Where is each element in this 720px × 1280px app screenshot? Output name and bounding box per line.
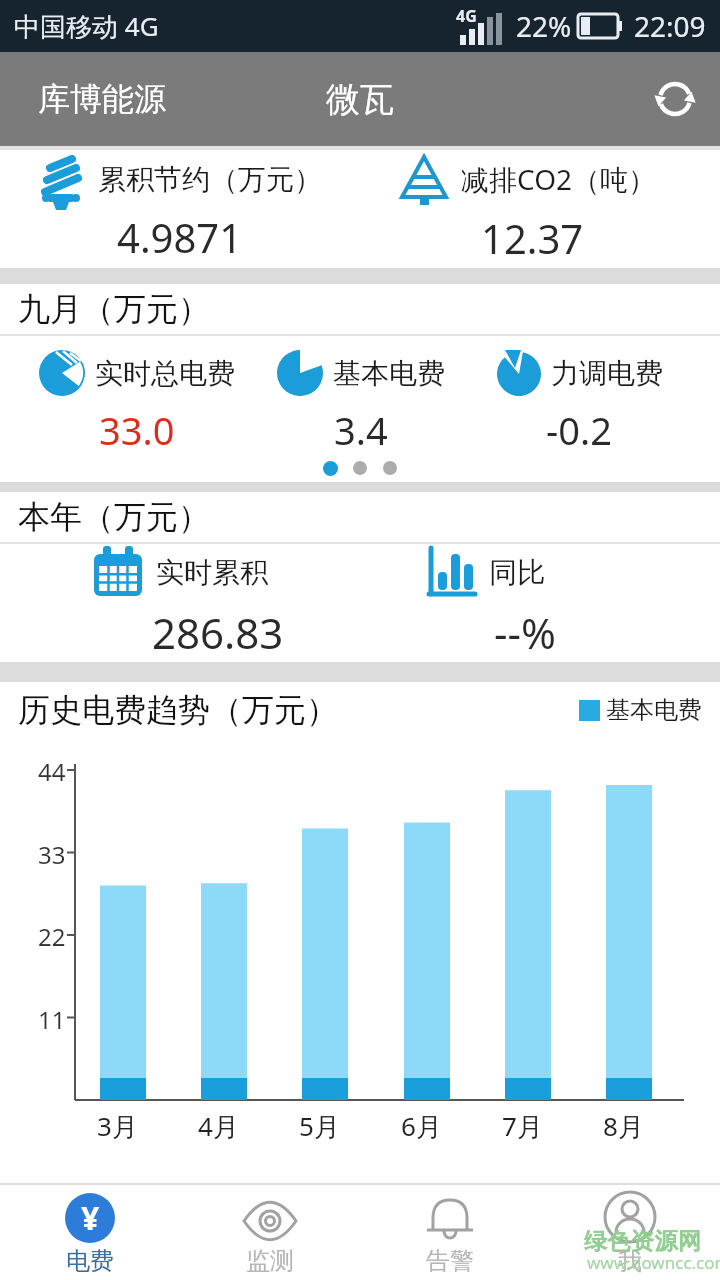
staticText: 5月 bbox=[299, 1108, 340, 1144]
staticText: 4.9871 bbox=[117, 210, 243, 264]
staticText: 7月 bbox=[502, 1108, 543, 1144]
staticText: 监测 bbox=[246, 1246, 294, 1276]
button[interactable]: 监测 bbox=[180, 1185, 360, 1280]
button[interactable]: 实时累积 bbox=[0, 546, 360, 661]
staticText: 6月 bbox=[401, 1108, 442, 1144]
staticText: 44 bbox=[38, 755, 66, 788]
staticText: --% bbox=[494, 604, 556, 661]
staticText: 中国移动 4G bbox=[14, 8, 159, 44]
button[interactable]: 我 bbox=[540, 1185, 720, 1280]
staticText: 4月 bbox=[198, 1108, 239, 1144]
staticText: 3.4 bbox=[334, 404, 388, 454]
button[interactable]: 同比 bbox=[360, 546, 720, 661]
button[interactable]: 基本电费 bbox=[258, 350, 463, 454]
staticText: 九月（万元） bbox=[18, 289, 210, 329]
staticText: 22 bbox=[38, 920, 66, 953]
staticText: 历史电费趋势（万元） bbox=[18, 690, 338, 730]
staticText: 实时总电费 bbox=[95, 356, 235, 391]
staticText: 电费 bbox=[66, 1246, 114, 1276]
staticText: 同比 bbox=[489, 555, 545, 590]
staticText: 33 bbox=[38, 838, 66, 871]
staticText: 22:09 bbox=[634, 7, 706, 45]
staticText: 告警 bbox=[426, 1246, 474, 1276]
staticText: 4G bbox=[456, 5, 477, 27]
button[interactable]: 库博能源 bbox=[38, 79, 166, 119]
staticText: 8月 bbox=[603, 1108, 644, 1144]
staticText: 绿色资源网 bbox=[584, 1227, 702, 1256]
staticText: 基本电费 bbox=[606, 695, 702, 725]
staticText: 本年（万元） bbox=[18, 497, 210, 537]
staticText: 基本电费 bbox=[333, 356, 445, 391]
staticText: www.downcc.com bbox=[587, 1251, 720, 1274]
staticText: 微瓦 bbox=[326, 78, 394, 121]
staticText: 33.0 bbox=[99, 404, 175, 454]
staticText: 286.83 bbox=[152, 604, 284, 661]
staticText: 11 bbox=[38, 1003, 66, 1036]
button[interactable]: 实时总电费 bbox=[16, 350, 258, 454]
button[interactable] bbox=[654, 78, 696, 120]
staticText: 我 bbox=[618, 1246, 642, 1276]
staticText: -0.2 bbox=[546, 404, 612, 454]
button[interactable]: ¥ bbox=[0, 1185, 180, 1280]
staticText: ¥ bbox=[81, 1196, 100, 1240]
button[interactable]: 告警 bbox=[360, 1185, 540, 1280]
staticText: 减排CO2（吨） bbox=[461, 160, 657, 198]
staticText: 实时累积 bbox=[156, 555, 268, 590]
staticText: 3月 bbox=[97, 1108, 138, 1144]
button[interactable]: 减排CO2（吨） bbox=[360, 153, 720, 265]
button[interactable]: 累积节约（万元） bbox=[0, 154, 360, 264]
staticText: 22% bbox=[516, 7, 572, 45]
staticText: 累积节约（万元） bbox=[98, 162, 322, 197]
staticText: 12.37 bbox=[481, 211, 584, 265]
button[interactable]: 力调电费 bbox=[489, 350, 668, 454]
staticText: 力调电费 bbox=[551, 356, 663, 391]
